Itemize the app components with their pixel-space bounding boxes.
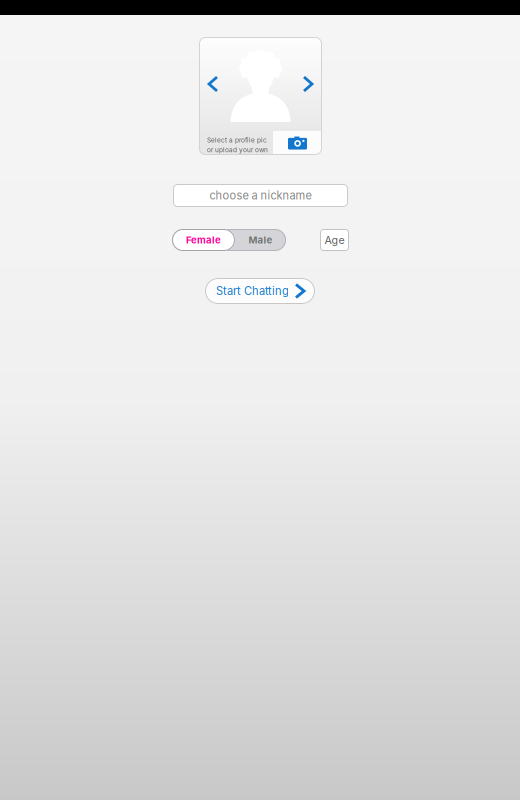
button[interactable]: Male (235, 229, 286, 251)
staticText: Age (324, 233, 344, 246)
button[interactable]: Take a photo (273, 131, 322, 155)
button[interactable]: Previous picture (202, 69, 224, 99)
button[interactable]: Female (172, 229, 235, 251)
button[interactable]: Next picture (297, 69, 319, 99)
staticText: Start Chatting (216, 284, 289, 298)
button[interactable]: choose a nickname (173, 184, 348, 207)
staticText: Select a profile pic (207, 136, 267, 144)
staticText: Male (248, 234, 272, 246)
staticText: choose a nickname (209, 189, 311, 202)
button[interactable]: Start Chatting (205, 278, 315, 304)
button[interactable]: Age (320, 229, 349, 251)
staticText: or upload your own (207, 146, 268, 154)
staticText: Female (186, 234, 221, 246)
